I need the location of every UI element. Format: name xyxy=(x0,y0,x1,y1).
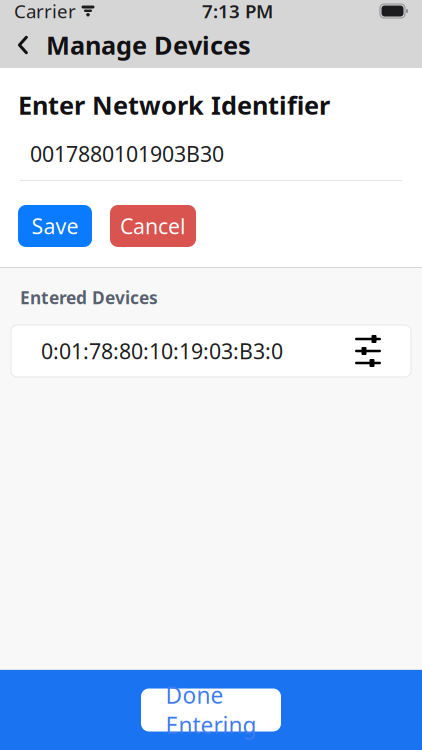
staticText: Cancel xyxy=(120,212,186,240)
button[interactable]: Done Entering xyxy=(141,688,281,731)
staticText: Entered Devices xyxy=(20,286,158,309)
staticText: Enter Network Identifier xyxy=(18,88,330,122)
staticText: Done Entering xyxy=(165,680,256,740)
button[interactable]: Save xyxy=(18,205,92,247)
staticText: Carrier xyxy=(14,0,76,23)
button[interactable]: Cancel xyxy=(110,205,196,247)
staticText: 0017880101903B30 xyxy=(30,140,224,168)
staticText: Save xyxy=(31,212,78,240)
staticText: 0:01:78:80:10:19:03:B3:0 xyxy=(41,337,283,365)
staticText: 7:13 PM xyxy=(202,0,273,23)
button[interactable]: 0:01:78:80:10:19:03:B3:0 xyxy=(11,325,411,377)
staticText: Manage Devices xyxy=(46,28,251,62)
button[interactable]: Back xyxy=(0,23,46,67)
